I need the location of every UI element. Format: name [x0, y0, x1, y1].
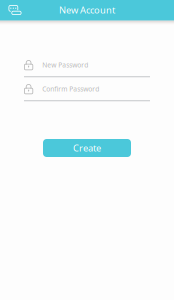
staticText: Create	[73, 142, 101, 154]
button[interactable]: Confirm Password	[24, 83, 150, 102]
button[interactable]: New Password	[24, 59, 150, 78]
staticText: New Password	[42, 61, 88, 69]
staticText: New Account	[59, 4, 115, 16]
staticText: Confirm Password	[42, 85, 99, 93]
button[interactable]: Create	[43, 139, 131, 157]
button[interactable]: Messages	[0, 0, 26, 20]
